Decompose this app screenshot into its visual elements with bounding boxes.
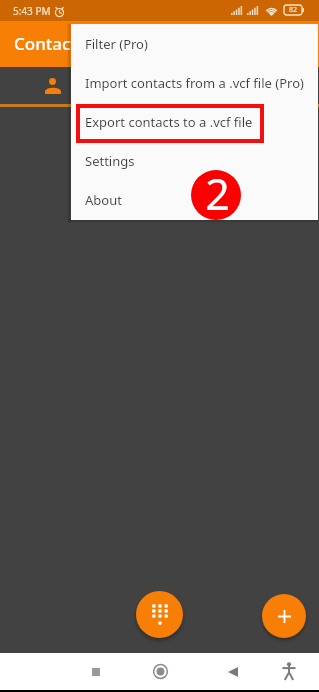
- button[interactable]: Import contacts from a .vcf file (Pro): [71, 63, 318, 102]
- button[interactable]: Filter (Pro): [71, 24, 318, 63]
- button[interactable]: Home: [138, 653, 183, 690]
- staticText: Contacts: [14, 32, 86, 55]
- staticText: Export contacts to a .vcf file: [85, 113, 253, 131]
- button[interactable]: Settings: [71, 141, 318, 180]
- button[interactable]: Contacts tab: [0, 67, 106, 107]
- button[interactable]: About: [71, 180, 318, 219]
- staticText: Filter (Pro): [85, 35, 148, 53]
- button[interactable]: Dialpad: [136, 591, 183, 638]
- button[interactable]: Recents: [73, 653, 118, 690]
- staticText: About: [85, 191, 122, 209]
- button[interactable]: Back: [210, 653, 255, 690]
- staticText: 2: [205, 170, 230, 214]
- staticText: Import contacts from a .vcf file (Pro): [85, 74, 304, 92]
- button[interactable]: Add contact: [262, 594, 306, 638]
- button[interactable]: Export contacts to a .vcf file: [71, 102, 318, 141]
- staticText: 82: [289, 5, 298, 15]
- staticText: 5:43 PM: [13, 4, 51, 18]
- staticText: Settings: [85, 152, 135, 170]
- button[interactable]: Accessibility: [267, 653, 311, 690]
